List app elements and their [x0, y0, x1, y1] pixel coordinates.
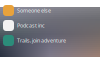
staticText: Podcast inc — [17, 22, 45, 29]
staticText: Trails, join adventure — [17, 37, 66, 44]
staticText: Someone else — [17, 7, 51, 14]
button[interactable]: Podcast inc — [3, 20, 100, 31]
button[interactable]: Trails, join adventure — [3, 35, 100, 46]
button[interactable]: Someone else — [3, 5, 100, 16]
